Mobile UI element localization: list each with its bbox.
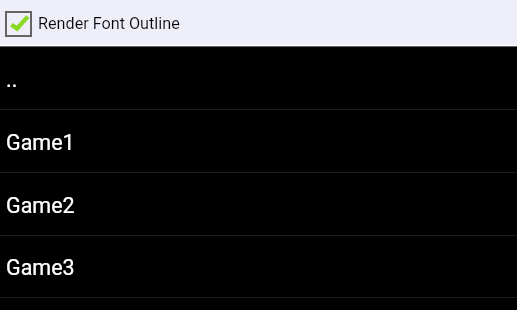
- staticText: Game2: [6, 193, 75, 218]
- button[interactable]: Render Font Outline checkbox: [0, 0, 517, 47]
- other: Render Font Outline checkbox: [5, 11, 32, 37]
- button[interactable]: Game2: [0, 173, 517, 236]
- staticText: ..: [6, 67, 18, 92]
- staticText: Render Font Outline: [38, 14, 180, 33]
- staticText: Game3: [6, 255, 75, 280]
- staticText: Game1: [6, 130, 75, 155]
- button[interactable]: Game3: [0, 235, 517, 298]
- button[interactable]: Game1: [0, 110, 517, 173]
- button[interactable]: ..: [0, 47, 517, 110]
